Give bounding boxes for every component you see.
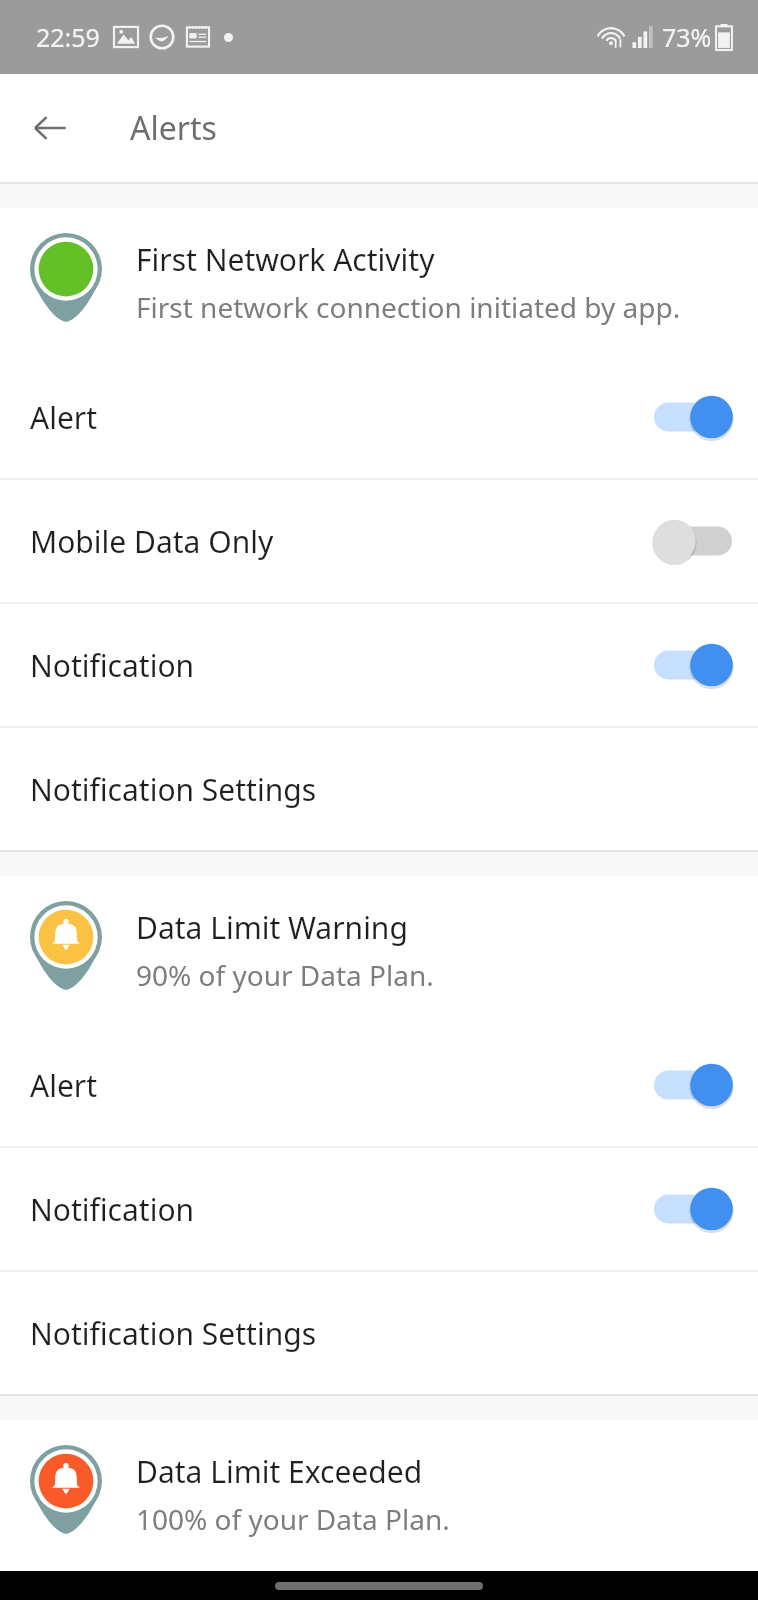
button[interactable]: Back [22,100,78,156]
staticText: Alerts [130,106,217,150]
staticText: First Network Activity [136,239,435,280]
button[interactable]: Notification on [654,1181,732,1237]
button[interactable]: Notification Settings [0,1272,758,1394]
button[interactable]: Alert on [654,1057,732,1113]
staticText: Notification [30,645,654,686]
staticText: 100% of your Data Plan. [136,1500,450,1538]
staticText: 22:59 [36,20,100,54]
staticText: Notification Settings [30,769,317,810]
button[interactable]: Mobile Data Only off [654,513,732,569]
button[interactable]: Notification on [654,637,732,693]
staticText: Mobile Data Only [30,521,654,562]
button[interactable]: Notification Settings [0,728,758,850]
button[interactable]: Alert on [654,389,732,445]
staticText: Data Limit Warning [136,907,408,948]
button[interactable]: Mobile Data Only [0,480,758,602]
button[interactable]: Notification [0,604,758,726]
button[interactable]: First Network Activity [0,208,758,356]
button[interactable]: Data Limit Warning [0,876,758,1024]
button[interactable]: Alert [0,1024,758,1146]
button[interactable]: Alert [0,356,758,478]
button[interactable]: Notification [0,1148,758,1270]
button[interactable]: Data Limit Exceeded [0,1420,758,1568]
staticText: 73% [662,20,712,54]
staticText: 90% of your Data Plan. [136,956,434,994]
staticText: Alert [30,397,654,438]
staticText: First network connection initiated by ap… [136,288,681,326]
staticText: Notification [30,1189,654,1230]
staticText: Notification Settings [30,1313,317,1354]
staticText: Alert [30,1065,654,1106]
staticText: Data Limit Exceeded [136,1451,423,1492]
